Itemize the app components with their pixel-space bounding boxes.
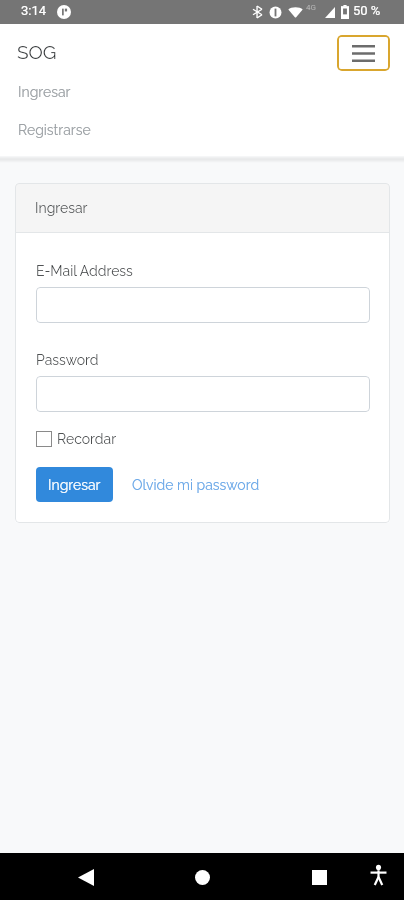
button[interactable]: Ingresar xyxy=(0,73,404,111)
button[interactable]: Accessibility xyxy=(361,854,395,896)
button[interactable]: Back xyxy=(62,854,109,900)
button[interactable] xyxy=(36,376,370,412)
button[interactable]: Toggle navigation menu xyxy=(337,35,390,71)
staticText: Ingresar xyxy=(35,200,88,216)
button[interactable]: Recent apps xyxy=(296,854,343,900)
staticText: Registrarse xyxy=(18,122,91,138)
button[interactable]: Olvide mi password xyxy=(132,467,260,502)
staticText: Olvide mi password xyxy=(132,477,260,493)
staticText: Password xyxy=(36,352,99,368)
staticText: 50 % xyxy=(353,3,381,18)
staticText: E-Mail Address xyxy=(36,263,133,279)
staticText: 4G xyxy=(306,3,316,12)
staticText: 3:14 xyxy=(21,3,47,18)
staticText: Recordar xyxy=(57,431,117,447)
button[interactable]: Home xyxy=(179,854,226,900)
staticText: Ingresar xyxy=(18,84,71,100)
staticText: Ingresar xyxy=(48,477,101,493)
button[interactable]: Recordar xyxy=(36,430,117,447)
button[interactable] xyxy=(36,287,370,323)
button[interactable]: Registrarse xyxy=(0,111,404,149)
button[interactable]: Ingresar xyxy=(36,467,113,502)
staticText: SOG xyxy=(17,41,57,63)
